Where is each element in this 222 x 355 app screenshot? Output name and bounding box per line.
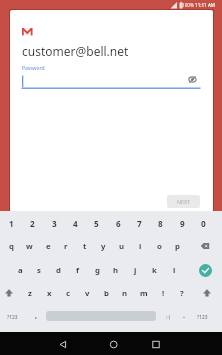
staticText: n xyxy=(122,288,128,299)
staticText: 3 xyxy=(52,218,57,229)
staticText: t xyxy=(83,241,87,252)
staticText: 1 xyxy=(9,218,14,229)
staticText: b xyxy=(104,288,109,299)
staticText: 8 xyxy=(158,218,163,229)
staticText: u xyxy=(119,241,125,252)
button[interactable]: NEXT xyxy=(167,195,200,208)
staticText: a xyxy=(18,265,23,276)
staticText: z xyxy=(28,288,32,299)
staticText: m xyxy=(140,288,148,299)
staticText: customer@bell.net xyxy=(22,43,129,59)
staticText: 0 xyxy=(201,218,206,229)
staticText: v xyxy=(85,288,90,299)
staticText: , xyxy=(35,311,37,321)
staticText: ?123 xyxy=(197,314,208,321)
staticText: 100% xyxy=(182,2,194,8)
staticText: e xyxy=(46,241,51,252)
staticText: 9 xyxy=(180,218,185,229)
staticText: h xyxy=(113,265,119,276)
staticText: s xyxy=(37,265,41,276)
button[interactable] xyxy=(99,332,129,355)
staticText: x xyxy=(47,288,52,299)
staticText: 6 xyxy=(116,218,121,229)
staticText: i xyxy=(139,241,142,252)
staticText: 4 xyxy=(73,218,78,229)
staticText: 2 xyxy=(30,218,35,229)
staticText: ! xyxy=(162,288,165,299)
staticText: . xyxy=(183,311,185,321)
staticText: NEXT xyxy=(177,198,190,205)
staticText: o xyxy=(157,241,162,252)
staticText: 11:11 AM xyxy=(195,2,216,8)
staticText: f xyxy=(76,265,80,276)
staticText: c xyxy=(66,288,71,299)
staticText: w xyxy=(26,241,33,252)
staticText: d xyxy=(56,265,61,276)
staticText: :-) xyxy=(166,314,171,320)
staticText: 5 xyxy=(94,218,99,229)
staticText: y xyxy=(101,241,106,252)
button[interactable] xyxy=(48,332,78,355)
staticText: l xyxy=(173,265,176,276)
staticText: k xyxy=(152,265,157,276)
staticText: p xyxy=(175,241,180,252)
staticText: 7 xyxy=(137,218,142,229)
staticText: q xyxy=(9,241,14,252)
staticText: ?123 xyxy=(7,314,18,321)
button[interactable] xyxy=(141,332,171,355)
staticText: r xyxy=(64,241,68,252)
staticText: Password xyxy=(22,65,45,72)
staticText: g xyxy=(95,265,100,276)
staticText: ? xyxy=(180,288,184,299)
staticText: j xyxy=(134,265,137,276)
